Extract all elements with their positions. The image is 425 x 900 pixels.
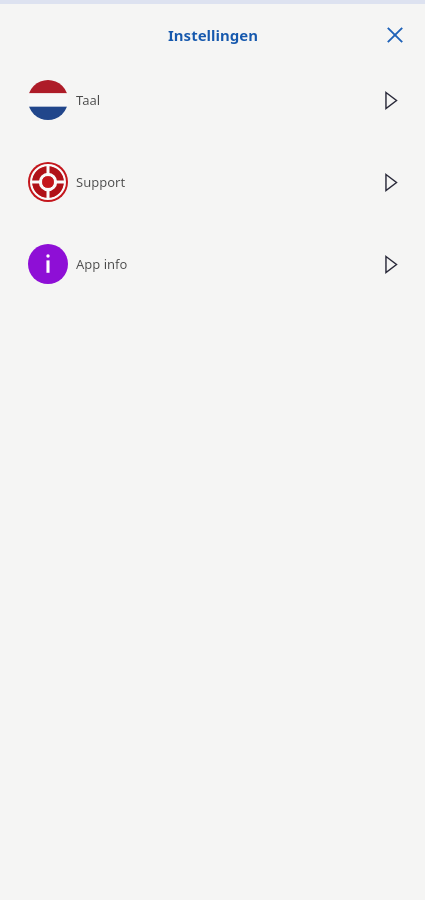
staticText: Support	[76, 173, 126, 191]
button[interactable]: Taal	[0, 80, 425, 120]
button[interactable]: Close	[375, 15, 415, 55]
button[interactable]: App info	[0, 244, 425, 284]
staticText: Taal	[76, 91, 101, 109]
button[interactable]: Support	[0, 162, 425, 202]
staticText: Instellingen	[168, 25, 258, 45]
staticText: App info	[76, 255, 128, 273]
